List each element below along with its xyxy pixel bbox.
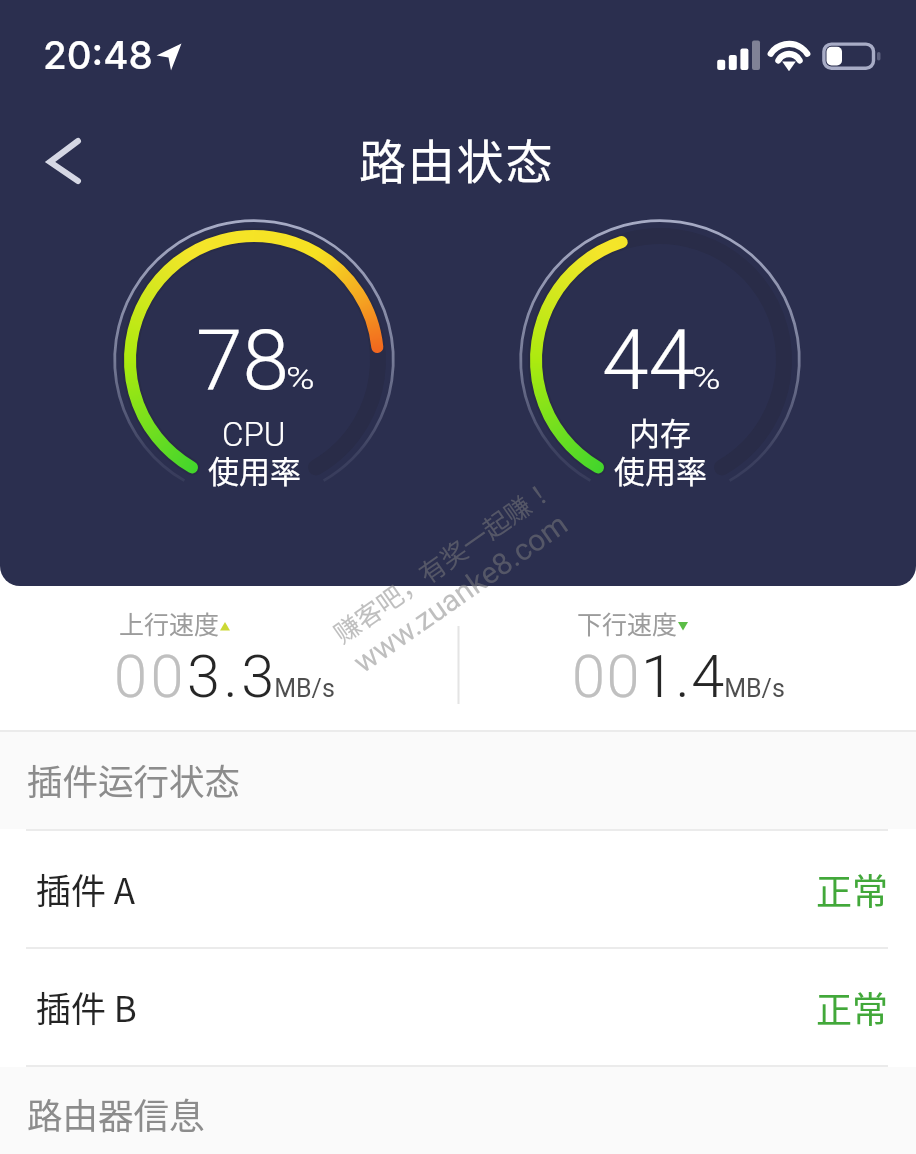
staticText: CPU <box>222 415 286 454</box>
staticText: 44 <box>602 311 696 409</box>
staticText: 路由状态 <box>359 124 555 192</box>
button[interactable] <box>458 586 916 730</box>
staticText: 20:48 <box>43 32 153 79</box>
staticText: 插件 B <box>36 981 137 1032</box>
staticText: 正常 <box>816 863 889 915</box>
staticText: www.zuanke8.com <box>347 506 574 680</box>
staticText: 插件运行状态 <box>27 754 241 805</box>
button[interactable]: 插件 B <box>0 949 916 1065</box>
button[interactable] <box>0 586 458 730</box>
staticText: 路由器信息 <box>27 1088 205 1139</box>
staticText: 上行速度 <box>119 605 220 641</box>
staticText: % <box>692 360 721 396</box>
staticText: 下行速度 <box>577 605 678 641</box>
staticText: 插件 A <box>36 863 136 914</box>
button[interactable]: 插件 A <box>0 831 916 947</box>
staticText: 正常 <box>816 981 889 1033</box>
staticText: 003.3MB/s <box>114 642 335 712</box>
staticText: 使用率 <box>208 447 301 492</box>
button[interactable]: Back <box>20 120 104 204</box>
staticText: 赚客吧，有奖一起赚！ <box>325 470 561 651</box>
staticText: 内存 <box>629 409 691 454</box>
staticText: 78 <box>196 311 290 409</box>
staticText: % <box>286 360 315 396</box>
staticText: 使用率 <box>614 447 707 492</box>
staticText: 001.4MB/s <box>572 642 785 712</box>
